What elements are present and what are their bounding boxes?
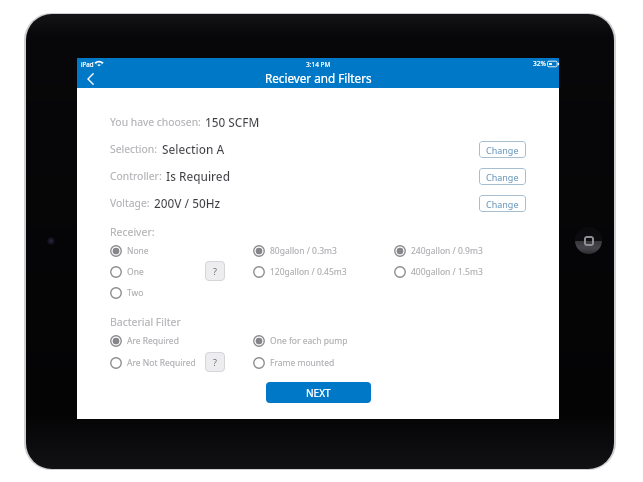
button[interactable]: Frame mounted [253,356,335,369]
staticText: Frame mounted [270,357,335,369]
button[interactable]: Help [205,261,225,281]
staticText: ? [213,265,217,277]
button[interactable]: One for each pump [253,334,348,347]
staticText: 32% [533,59,546,68]
button[interactable]: 400gallon / 1.5m3 [394,265,483,278]
button[interactable]: Help [205,352,225,372]
staticText: One [127,266,144,278]
staticText: 200V / 50Hz [154,195,221,211]
button[interactable]: 120gallon / 0.45m3 [253,265,347,278]
staticText: Are Required [127,335,179,347]
staticText: None [127,245,149,257]
staticText: You have choosen: [110,115,201,129]
staticText: ? [213,356,217,368]
staticText: Reciever and Filters [265,70,372,86]
staticText: Is Required [166,168,230,184]
staticText: NEXT [306,386,331,400]
button[interactable]: One [110,265,144,278]
button[interactable]: Are Not Required [110,356,196,369]
button[interactable]: Change [479,168,526,185]
staticText: Selection A [162,141,225,157]
staticText: Voltage: [110,196,150,210]
button[interactable]: 240gallon / 0.9m3 [394,244,483,257]
button[interactable]: Two [110,286,144,299]
button[interactable]: Are Required [110,334,179,347]
button[interactable]: None [110,244,149,257]
staticText: 120gallon / 0.45m3 [270,266,347,278]
staticText: One for each pump [270,335,348,347]
staticText: Bacterial Filter [110,315,181,329]
staticText: 3:14 PM [306,60,331,69]
staticText: Selection: [110,142,158,156]
staticText: Two [127,287,144,299]
staticText: Are Not Required [127,357,196,369]
button[interactable]: 80gallon / 0.3m3 [253,244,337,257]
staticText: 80gallon / 0.3m3 [270,245,337,257]
staticText: Receiver: [110,225,155,239]
button[interactable]: Back [78,70,103,88]
staticText: Change [486,171,519,183]
staticText: Controller: [110,169,162,183]
staticText: 150 SCFM [205,114,260,130]
button[interactable]: Change [479,195,526,212]
staticText: iPad [81,60,94,68]
button[interactable]: NEXT [266,382,371,403]
staticText: 400gallon / 1.5m3 [411,266,483,278]
button[interactable]: Change [479,141,526,158]
staticText: Change [486,198,519,210]
staticText: Change [486,144,519,156]
staticText: 240gallon / 0.9m3 [411,245,483,257]
